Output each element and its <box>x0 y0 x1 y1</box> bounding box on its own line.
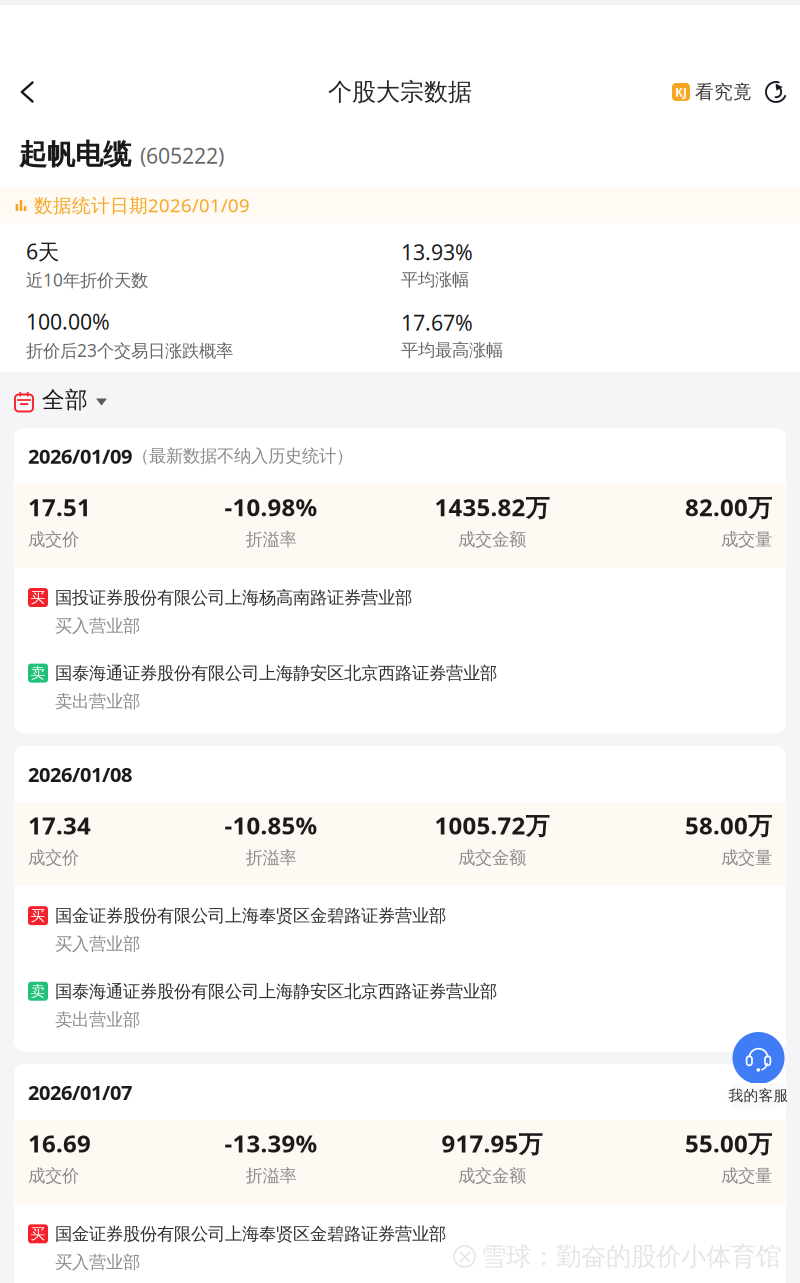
staticText: 卖 <box>30 664 45 682</box>
staticText: 折溢率 <box>245 529 296 550</box>
staticText: 起帆电缆 <box>19 137 131 172</box>
button[interactable]: 返回 <box>0 62 54 122</box>
staticText: 折溢率 <box>245 847 296 868</box>
staticText: 买入营业部 <box>55 933 140 955</box>
staticText: 卖出营业部 <box>55 691 140 712</box>
staticText: 成交量 <box>721 1165 772 1186</box>
staticText: -10.85% <box>224 809 317 841</box>
staticText: 1005.72万 <box>434 809 549 841</box>
staticText: 2026/01/09 <box>28 443 132 469</box>
staticText: 2026/01/07 <box>28 1079 132 1106</box>
staticText: 成交量 <box>721 847 772 868</box>
staticText: 成交价 <box>28 529 79 550</box>
staticText: 折溢率 <box>245 1165 296 1186</box>
staticText: 16.69 <box>28 1127 91 1159</box>
staticText: 成交价 <box>28 1165 79 1186</box>
staticText: 6天 <box>26 237 59 265</box>
staticText: （最新数据不纳入历史统计） <box>132 445 353 467</box>
staticText: 17.67% <box>401 308 473 336</box>
staticText: 58.00万 <box>685 809 772 841</box>
staticText: 买入营业部 <box>55 1252 140 1273</box>
staticText: 卖出营业部 <box>55 1009 140 1030</box>
button[interactable]: 刷新 <box>752 62 800 122</box>
staticText: 17.34 <box>28 809 91 841</box>
staticText: 国金证券股份有限公司上海奉贤区金碧路证券营业部 <box>55 905 446 926</box>
staticText: 数据统计日期2026/01/09 <box>34 193 250 217</box>
staticText: 100.00% <box>26 307 110 336</box>
staticText: 全部 <box>42 386 88 414</box>
staticText: 成交价 <box>28 847 79 868</box>
staticText: 折价后23个交易日涨跌概率 <box>26 339 233 362</box>
staticText: -13.39% <box>224 1127 317 1159</box>
staticText: 近10年折价天数 <box>26 268 148 291</box>
staticText: 买入营业部 <box>55 615 140 637</box>
staticText: 成交金额 <box>458 847 526 868</box>
staticText: 我的客服 <box>728 1086 788 1104</box>
staticText: 成交量 <box>721 529 772 550</box>
staticText: 国金证券股份有限公司上海奉贤区金碧路证券营业部 <box>55 1223 446 1245</box>
staticText: 平均涨幅 <box>401 269 469 290</box>
staticText: 国泰海通证券股份有限公司上海静安区北京西路证券营业部 <box>55 981 497 1002</box>
staticText: 17.51 <box>28 491 91 523</box>
staticText: 买 <box>30 907 45 925</box>
staticText: 看究竟 <box>695 80 752 103</box>
staticText: 成交金额 <box>458 529 526 550</box>
staticText: 55.00万 <box>685 1127 772 1159</box>
staticText: 917.95万 <box>441 1127 542 1159</box>
staticText: KJ <box>675 84 687 100</box>
button[interactable]: KJ <box>658 62 752 122</box>
staticText: 平均最高涨幅 <box>401 339 503 361</box>
staticText: 国泰海通证券股份有限公司上海静安区北京西路证券营业部 <box>55 663 497 684</box>
staticText: 1435.82万 <box>434 491 549 523</box>
staticText: (605222) <box>134 141 224 170</box>
staticText: 13.93% <box>401 238 473 266</box>
staticText: -10.98% <box>224 491 317 523</box>
staticText: 82.00万 <box>685 491 772 523</box>
staticText: 雪球：勤奋的股价小体育馆 <box>481 1241 781 1272</box>
staticText: 国投证券股份有限公司上海杨高南路证券营业部 <box>55 587 412 608</box>
staticText: 买 <box>30 588 45 606</box>
staticText: 个股大宗数据 <box>328 77 472 107</box>
staticText: 卖 <box>30 982 45 1000</box>
button[interactable]: 全部 <box>0 372 800 428</box>
staticText: 成交金额 <box>458 1165 526 1186</box>
staticText: 2026/01/08 <box>28 761 132 787</box>
staticText: 买 <box>30 1225 45 1243</box>
button[interactable]: 我的客服 <box>727 1032 790 1109</box>
